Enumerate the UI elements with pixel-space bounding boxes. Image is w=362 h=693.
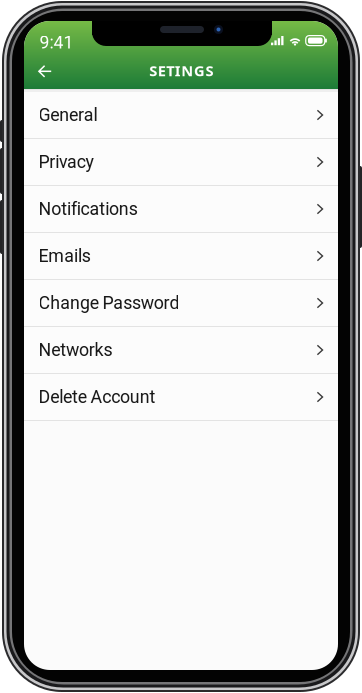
staticText: Notifications bbox=[38, 199, 138, 219]
staticText: General bbox=[38, 105, 98, 125]
staticText: SETINGS bbox=[149, 61, 213, 80]
staticText: Delete Account bbox=[38, 387, 155, 407]
button[interactable]: Back bbox=[25, 52, 65, 90]
button[interactable]: Emails bbox=[24, 233, 338, 279]
button[interactable]: Change Password bbox=[24, 280, 338, 326]
button[interactable]: General bbox=[24, 92, 338, 138]
staticText: Emails bbox=[38, 246, 91, 266]
staticText: 9:41 bbox=[40, 32, 74, 53]
button[interactable]: Notifications bbox=[24, 186, 338, 232]
staticText: Change Password bbox=[38, 293, 179, 313]
button[interactable]: Privacy bbox=[24, 139, 338, 185]
button[interactable]: Networks bbox=[24, 327, 338, 373]
button[interactable]: Delete Account bbox=[24, 374, 338, 420]
staticText: Networks bbox=[38, 340, 112, 360]
staticText: Privacy bbox=[38, 152, 94, 172]
